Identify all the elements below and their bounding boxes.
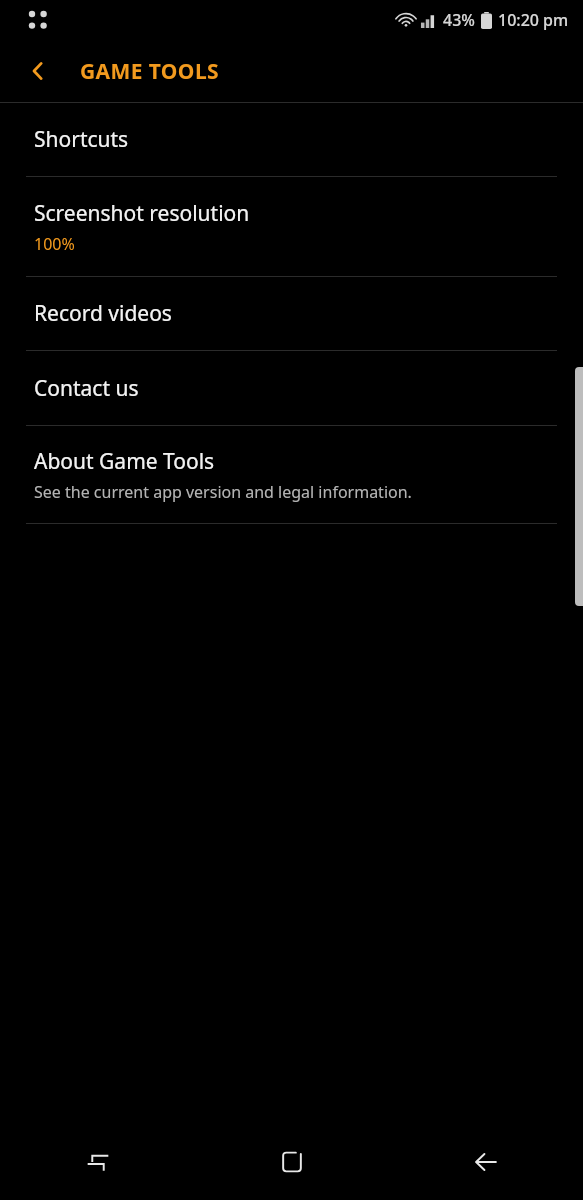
- button[interactable]: Record videos: [0, 277, 583, 350]
- button[interactable]: Recent apps: [0, 1124, 195, 1200]
- staticText: See the current app version and legal in…: [34, 481, 412, 503]
- button[interactable]: Home: [195, 1124, 389, 1200]
- button[interactable]: Screenshot resolution: [0, 177, 583, 276]
- staticText: Screenshot resolution: [34, 199, 250, 228]
- button[interactable]: Back: [389, 1124, 583, 1200]
- staticText: 43%: [443, 9, 475, 31]
- staticText: Shortcuts: [34, 125, 129, 154]
- staticText: GAME TOOLS: [80, 57, 219, 86]
- staticText: 10:20 pm: [498, 9, 569, 31]
- button[interactable]: Navigate up: [16, 49, 60, 93]
- staticText: 100%: [34, 233, 75, 255]
- button[interactable]: About Game Tools: [0, 426, 583, 523]
- button[interactable]: Contact us: [0, 351, 583, 425]
- staticText: Contact us: [34, 374, 139, 403]
- button[interactable]: Shortcuts: [0, 103, 583, 176]
- staticText: Record videos: [34, 299, 172, 328]
- staticText: About Game Tools: [34, 447, 215, 476]
